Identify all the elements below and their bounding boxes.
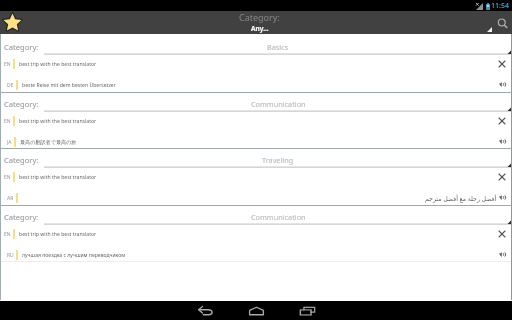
button[interactable]: Speak — [499, 195, 505, 200]
button[interactable]: Speak — [499, 139, 505, 144]
staticText: Any... — [251, 24, 269, 33]
staticText: Category: — [4, 99, 39, 109]
staticText: Traveling — [262, 155, 294, 165]
button[interactable]: Remove — [499, 174, 505, 180]
staticText: EN — [4, 174, 11, 181]
button[interactable]: Remove — [499, 61, 505, 67]
staticText: Category: — [4, 212, 39, 222]
staticText: 11:54 — [491, 1, 509, 11]
staticText: beste Reise mit dem besten Übersetzer — [22, 82, 116, 89]
staticText: DE — [7, 82, 14, 89]
staticText: Basics — [267, 42, 289, 52]
button[interactable]: Category: — [0, 91, 512, 112]
staticText: RU — [7, 252, 14, 259]
staticText: EN — [4, 61, 11, 68]
staticText: лучшая поездка с лучшим переводчиком — [22, 252, 126, 259]
button[interactable]: Search — [497, 18, 509, 30]
staticText: AR — [7, 195, 14, 202]
button[interactable]: Category: — [239, 11, 280, 33]
button[interactable]: EN — [0, 112, 512, 130]
staticText: Category: — [4, 155, 39, 165]
staticText: EN — [4, 118, 11, 125]
staticText: 最高の翻訳者で最高の旅 — [20, 139, 77, 145]
button[interactable]: Category: — [0, 34, 512, 55]
staticText: Category: — [239, 11, 280, 23]
staticText: EN — [4, 231, 11, 238]
button[interactable]: EN — [0, 225, 512, 243]
button[interactable]: Remove — [499, 118, 505, 124]
staticText: best trip with the best translator — [19, 174, 97, 181]
button[interactable]: Home — [236, 301, 276, 320]
staticText: Communication — [251, 99, 306, 109]
button[interactable]: Category: — [0, 204, 512, 225]
button[interactable]: Speak — [499, 252, 505, 257]
button[interactable]: JA — [0, 133, 512, 151]
button[interactable]: Back — [185, 301, 225, 320]
button[interactable]: Remove — [499, 231, 505, 237]
staticText: best trip with the best translator — [19, 61, 97, 68]
button[interactable]: EN — [0, 168, 512, 186]
button[interactable]: EN — [0, 55, 512, 73]
staticText: best trip with the best translator — [19, 118, 97, 125]
button[interactable]: DE — [0, 76, 512, 94]
button[interactable]: AR — [0, 189, 512, 207]
button[interactable]: Speak — [499, 82, 505, 87]
staticText: JA — [7, 139, 12, 146]
staticText: أفضل رحلة مع أفضل مترجم — [425, 194, 497, 202]
staticText: best trip with the best translator — [19, 231, 97, 238]
button[interactable]: Recent apps — [287, 301, 327, 320]
button[interactable]: Favorites — [3, 13, 22, 32]
staticText: Category: — [4, 42, 39, 52]
button[interactable]: Category: — [0, 147, 512, 168]
staticText: Communication — [251, 212, 306, 222]
button[interactable]: RU — [0, 246, 512, 264]
